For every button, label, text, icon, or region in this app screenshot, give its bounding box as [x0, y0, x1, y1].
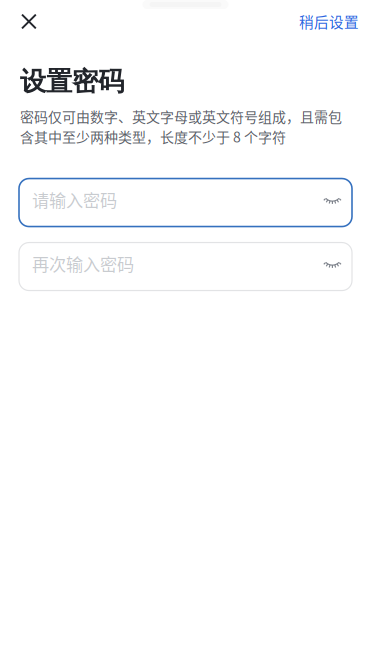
staticText: 再次输入密码 — [32, 251, 134, 276]
button[interactable]: 再次输入密码 — [19, 243, 352, 291]
staticText: 密码仅可由数字、英文字母或英文符号组成，且需包含其中至少两种类型，长度不少于 8… — [20, 106, 342, 146]
staticText: 请输入密码 — [32, 187, 117, 212]
button[interactable]: 请输入密码 — [19, 179, 352, 227]
button[interactable]: 稍后设置 — [283, 0, 371, 46]
staticText: 稍后设置 — [299, 11, 359, 32]
staticText: 设置密码 — [20, 65, 124, 98]
button[interactable]: Close — [0, 1, 52, 42]
